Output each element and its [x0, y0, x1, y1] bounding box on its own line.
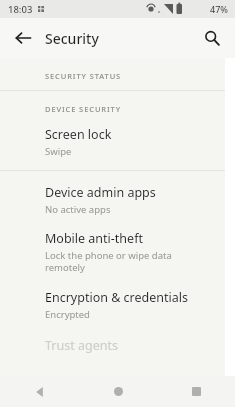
staticText: No active apps — [45, 203, 111, 216]
staticText: Mobile anti-theft — [45, 230, 143, 247]
staticText: Lock the phone or wipe data remotely — [45, 249, 172, 274]
button[interactable]: Home — [79, 376, 157, 407]
button[interactable]: Recent apps — [157, 376, 235, 407]
button[interactable]: Back — [0, 376, 79, 407]
staticText: Encryption & credentials — [45, 289, 188, 306]
button[interactable]: Trust agents — [0, 321, 225, 354]
button[interactable]: Mobile anti-theft — [0, 216, 225, 274]
button[interactable]: Back — [13, 28, 33, 48]
staticText: 47% — [210, 3, 228, 15]
button[interactable]: Search — [201, 27, 223, 49]
staticText: Screen lock — [45, 126, 112, 143]
staticText: Security — [45, 29, 99, 48]
button[interactable]: Screen lock — [0, 126, 225, 170]
staticText: Device admin apps — [45, 184, 156, 201]
button[interactable]: Encryption & credentials — [0, 274, 225, 321]
staticText: 18:03 — [8, 3, 33, 16]
staticText: Swipe — [45, 145, 72, 158]
staticText: SECURITY STATUS — [45, 71, 122, 81]
button[interactable]: Device admin apps — [0, 171, 225, 216]
staticText: DEVICE SECURITY — [45, 104, 121, 114]
staticText: Trust agents — [45, 337, 118, 354]
staticText: Encrypted — [45, 308, 90, 321]
button[interactable]: SECURITY STATUS — [0, 70, 225, 90]
